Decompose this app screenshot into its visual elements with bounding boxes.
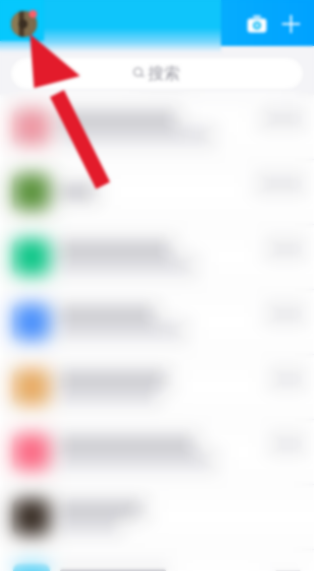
button[interactable] — [0, 290, 314, 355]
button[interactable]: Camera — [240, 9, 274, 39]
button[interactable]: 搜索 — [11, 58, 303, 89]
button[interactable] — [0, 225, 314, 290]
button[interactable] — [0, 355, 314, 420]
button[interactable]: Add — [274, 9, 308, 39]
button[interactable] — [0, 160, 314, 225]
staticText: 搜索 — [148, 63, 180, 84]
button[interactable] — [0, 420, 314, 485]
button[interactable]: Profile — [9, 10, 37, 38]
button[interactable] — [0, 485, 314, 550]
button[interactable] — [0, 550, 314, 571]
button[interactable] — [0, 95, 314, 160]
